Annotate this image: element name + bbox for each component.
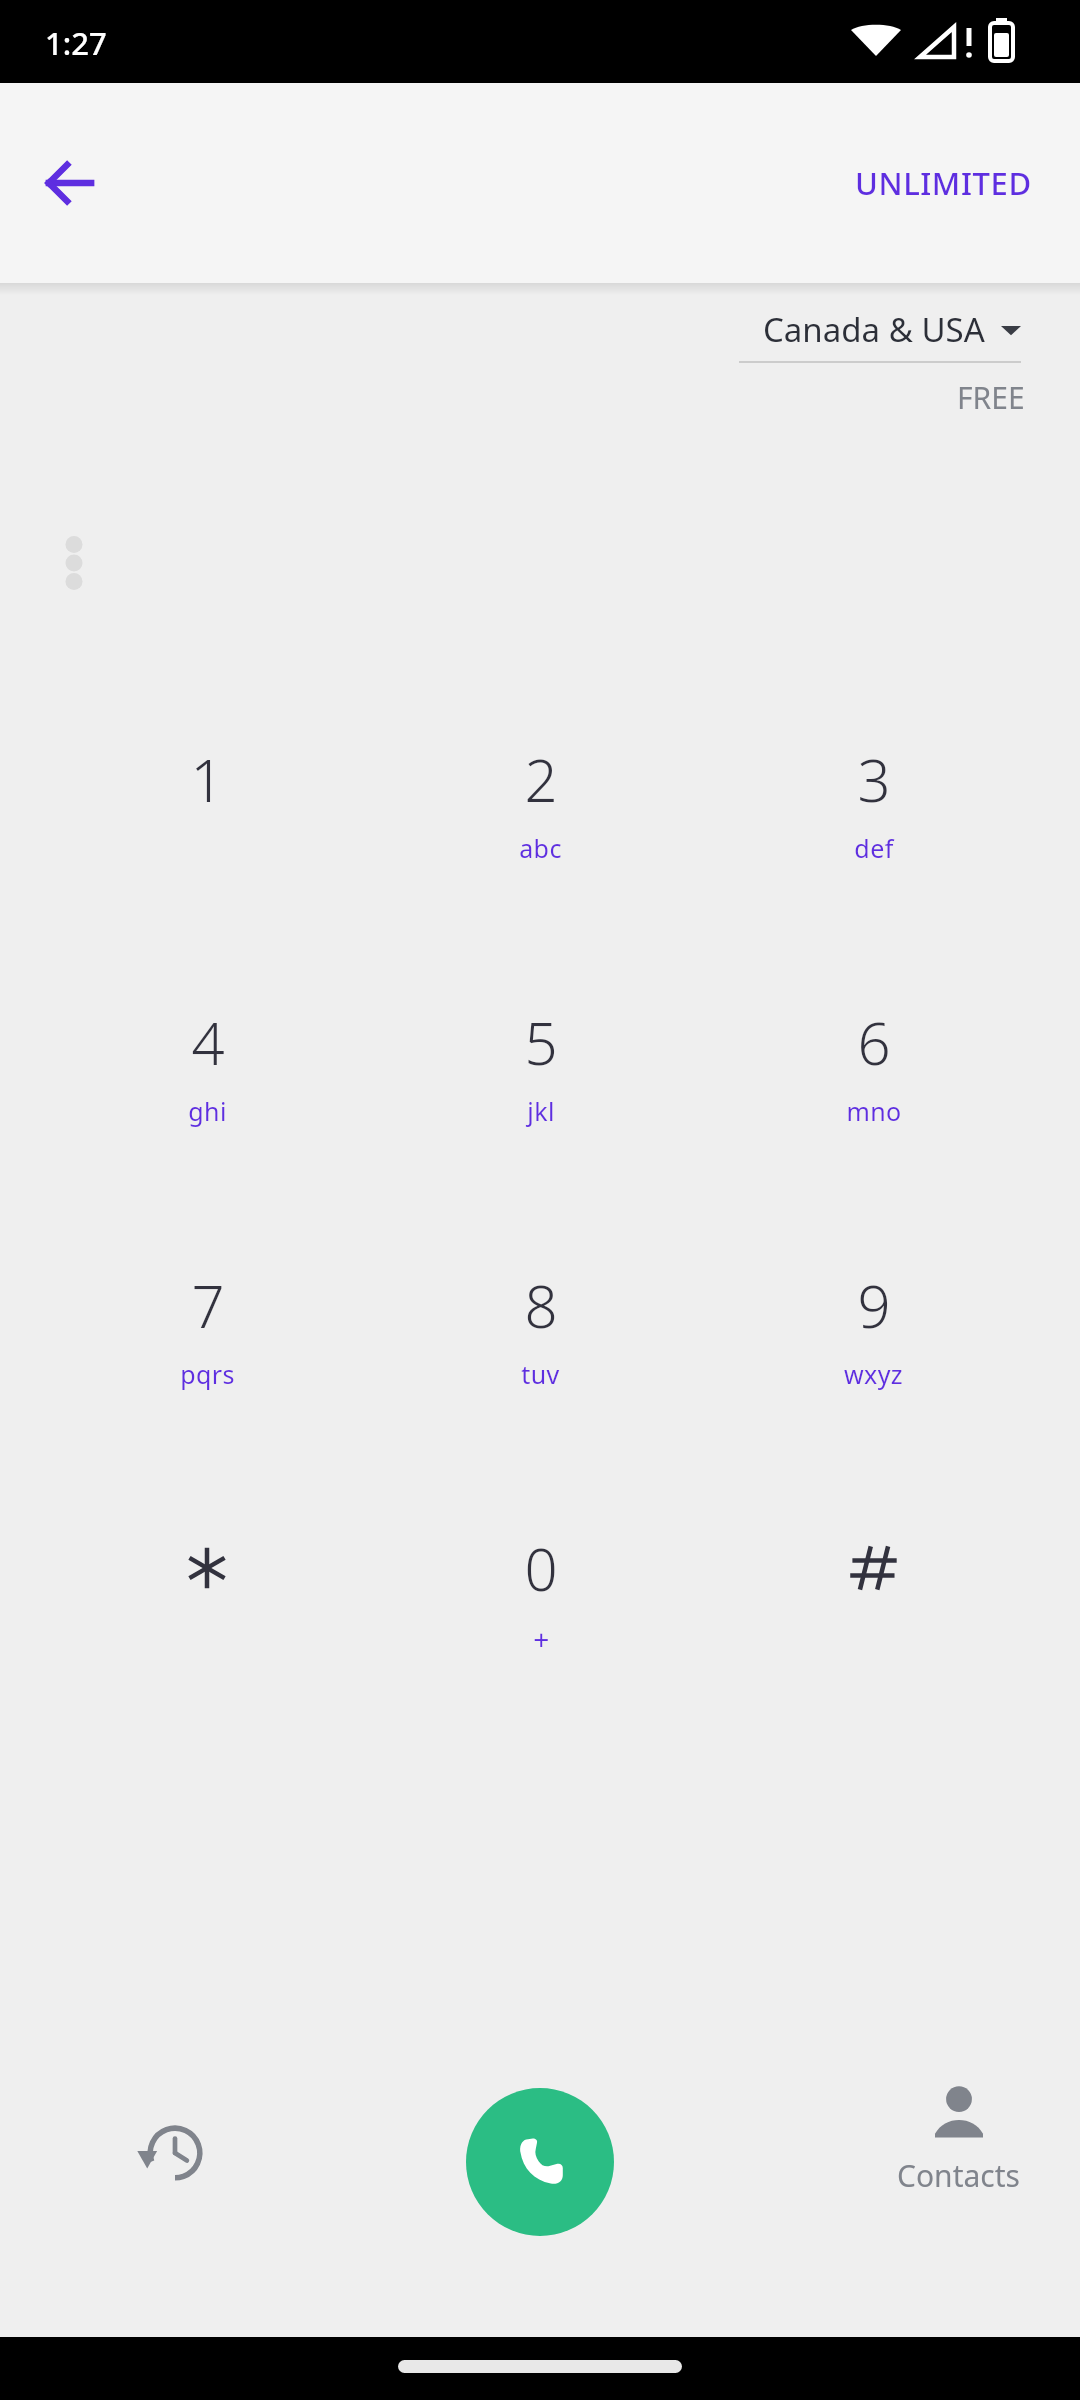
- staticText: Contacts: [897, 2155, 1020, 2196]
- staticText: ghi: [188, 1094, 227, 1128]
- button[interactable]: 8: [374, 1259, 707, 1437]
- staticText: 1: [190, 740, 224, 819]
- staticText: 0: [524, 1529, 558, 1608]
- staticText: 3: [857, 740, 891, 819]
- staticText: pqrs: [180, 1357, 235, 1391]
- button[interactable]: Canada & USA: [735, 303, 1025, 367]
- staticText: def: [854, 831, 894, 865]
- button[interactable]: 9: [707, 1259, 1040, 1437]
- staticText: 2: [524, 740, 558, 819]
- button[interactable]: UNLIMITED: [823, 140, 1064, 226]
- staticText: FREE: [957, 377, 1025, 418]
- staticText: tuv: [521, 1357, 560, 1391]
- button[interactable]: Call history: [118, 2096, 232, 2210]
- button[interactable]: 2: [374, 733, 707, 911]
- staticText: wxyz: [844, 1357, 903, 1391]
- button[interactable]: Call: [466, 2088, 614, 2236]
- staticText: abc: [519, 831, 562, 865]
- button[interactable]: 0: [374, 1522, 707, 1700]
- button[interactable]: [707, 1522, 1040, 1700]
- button[interactable]: 4: [40, 996, 374, 1174]
- button[interactable]: More options: [26, 515, 122, 611]
- button[interactable]: 3: [707, 733, 1040, 911]
- staticText: Canada & USA: [763, 307, 985, 352]
- button[interactable]: Back: [22, 135, 118, 231]
- staticText: 1:27: [45, 22, 107, 64]
- staticText: 5: [524, 1003, 558, 1082]
- button[interactable]: 1: [40, 733, 374, 911]
- button[interactable]: [40, 1522, 374, 1700]
- staticText: 7: [191, 1266, 225, 1345]
- staticText: mno: [846, 1094, 902, 1128]
- staticText: 6: [857, 1003, 891, 1082]
- button[interactable]: 5: [374, 996, 707, 1174]
- button[interactable]: 6: [707, 996, 1040, 1174]
- staticText: +: [533, 1620, 550, 1658]
- button[interactable]: Contacts: [875, 2073, 1042, 2206]
- button[interactable]: 7: [40, 1259, 374, 1437]
- staticText: jkl: [527, 1094, 555, 1128]
- staticText: 9: [857, 1266, 891, 1345]
- staticText: 4: [191, 1003, 225, 1082]
- staticText: UNLIMITED: [855, 162, 1032, 204]
- staticText: 8: [524, 1266, 558, 1345]
